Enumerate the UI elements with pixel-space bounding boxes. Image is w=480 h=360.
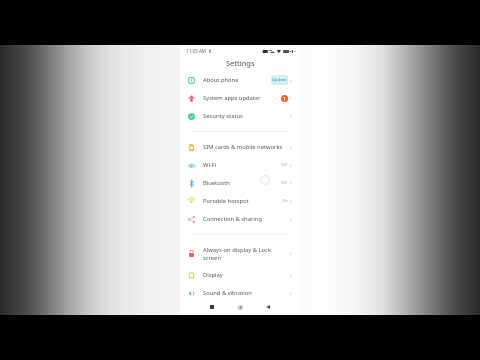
button[interactable]: Sound & vibration [180, 284, 300, 302]
button[interactable]: Portable hotspot [180, 192, 300, 210]
button[interactable]: Connection & sharing [180, 210, 300, 228]
staticText: Wi-Fi [203, 161, 217, 169]
staticText: Security status [203, 112, 243, 120]
button[interactable]: About phone [180, 71, 300, 89]
button[interactable]: SIM cards & mobile networks [180, 138, 300, 156]
button[interactable]: Recents [206, 301, 218, 313]
button[interactable]: Security status [180, 107, 300, 125]
staticText: Connection & sharing [203, 215, 262, 223]
button[interactable]: Home [234, 301, 246, 313]
staticText: 1 [283, 96, 286, 102]
staticText: Off [281, 180, 288, 186]
staticText: Settings [226, 58, 255, 68]
staticText: System apps updater [203, 94, 261, 102]
button[interactable]: Display [180, 266, 300, 284]
staticText: SIM cards & mobile networks [203, 143, 283, 151]
staticText: Always-on display & Lock screen [203, 246, 271, 261]
button[interactable]: Update [271, 75, 288, 85]
staticText: About phone [203, 76, 239, 84]
button[interactable]: Bluetooth [180, 174, 300, 192]
staticText: Portable hotspot [203, 197, 249, 205]
staticText: Display [203, 271, 223, 279]
button[interactable]: Back [262, 301, 274, 313]
staticText: On [282, 198, 288, 204]
button[interactable]: Wi-Fi [180, 156, 300, 174]
staticText: Update [272, 77, 287, 83]
staticText: 11:03 AM [186, 48, 207, 54]
staticText: Bluetooth [203, 179, 230, 187]
staticText: Sound & vibration [203, 289, 252, 297]
button[interactable]: Always-on display & Lock screen [180, 241, 300, 266]
staticText: Off [281, 162, 288, 168]
button[interactable]: System apps updater [180, 89, 300, 107]
